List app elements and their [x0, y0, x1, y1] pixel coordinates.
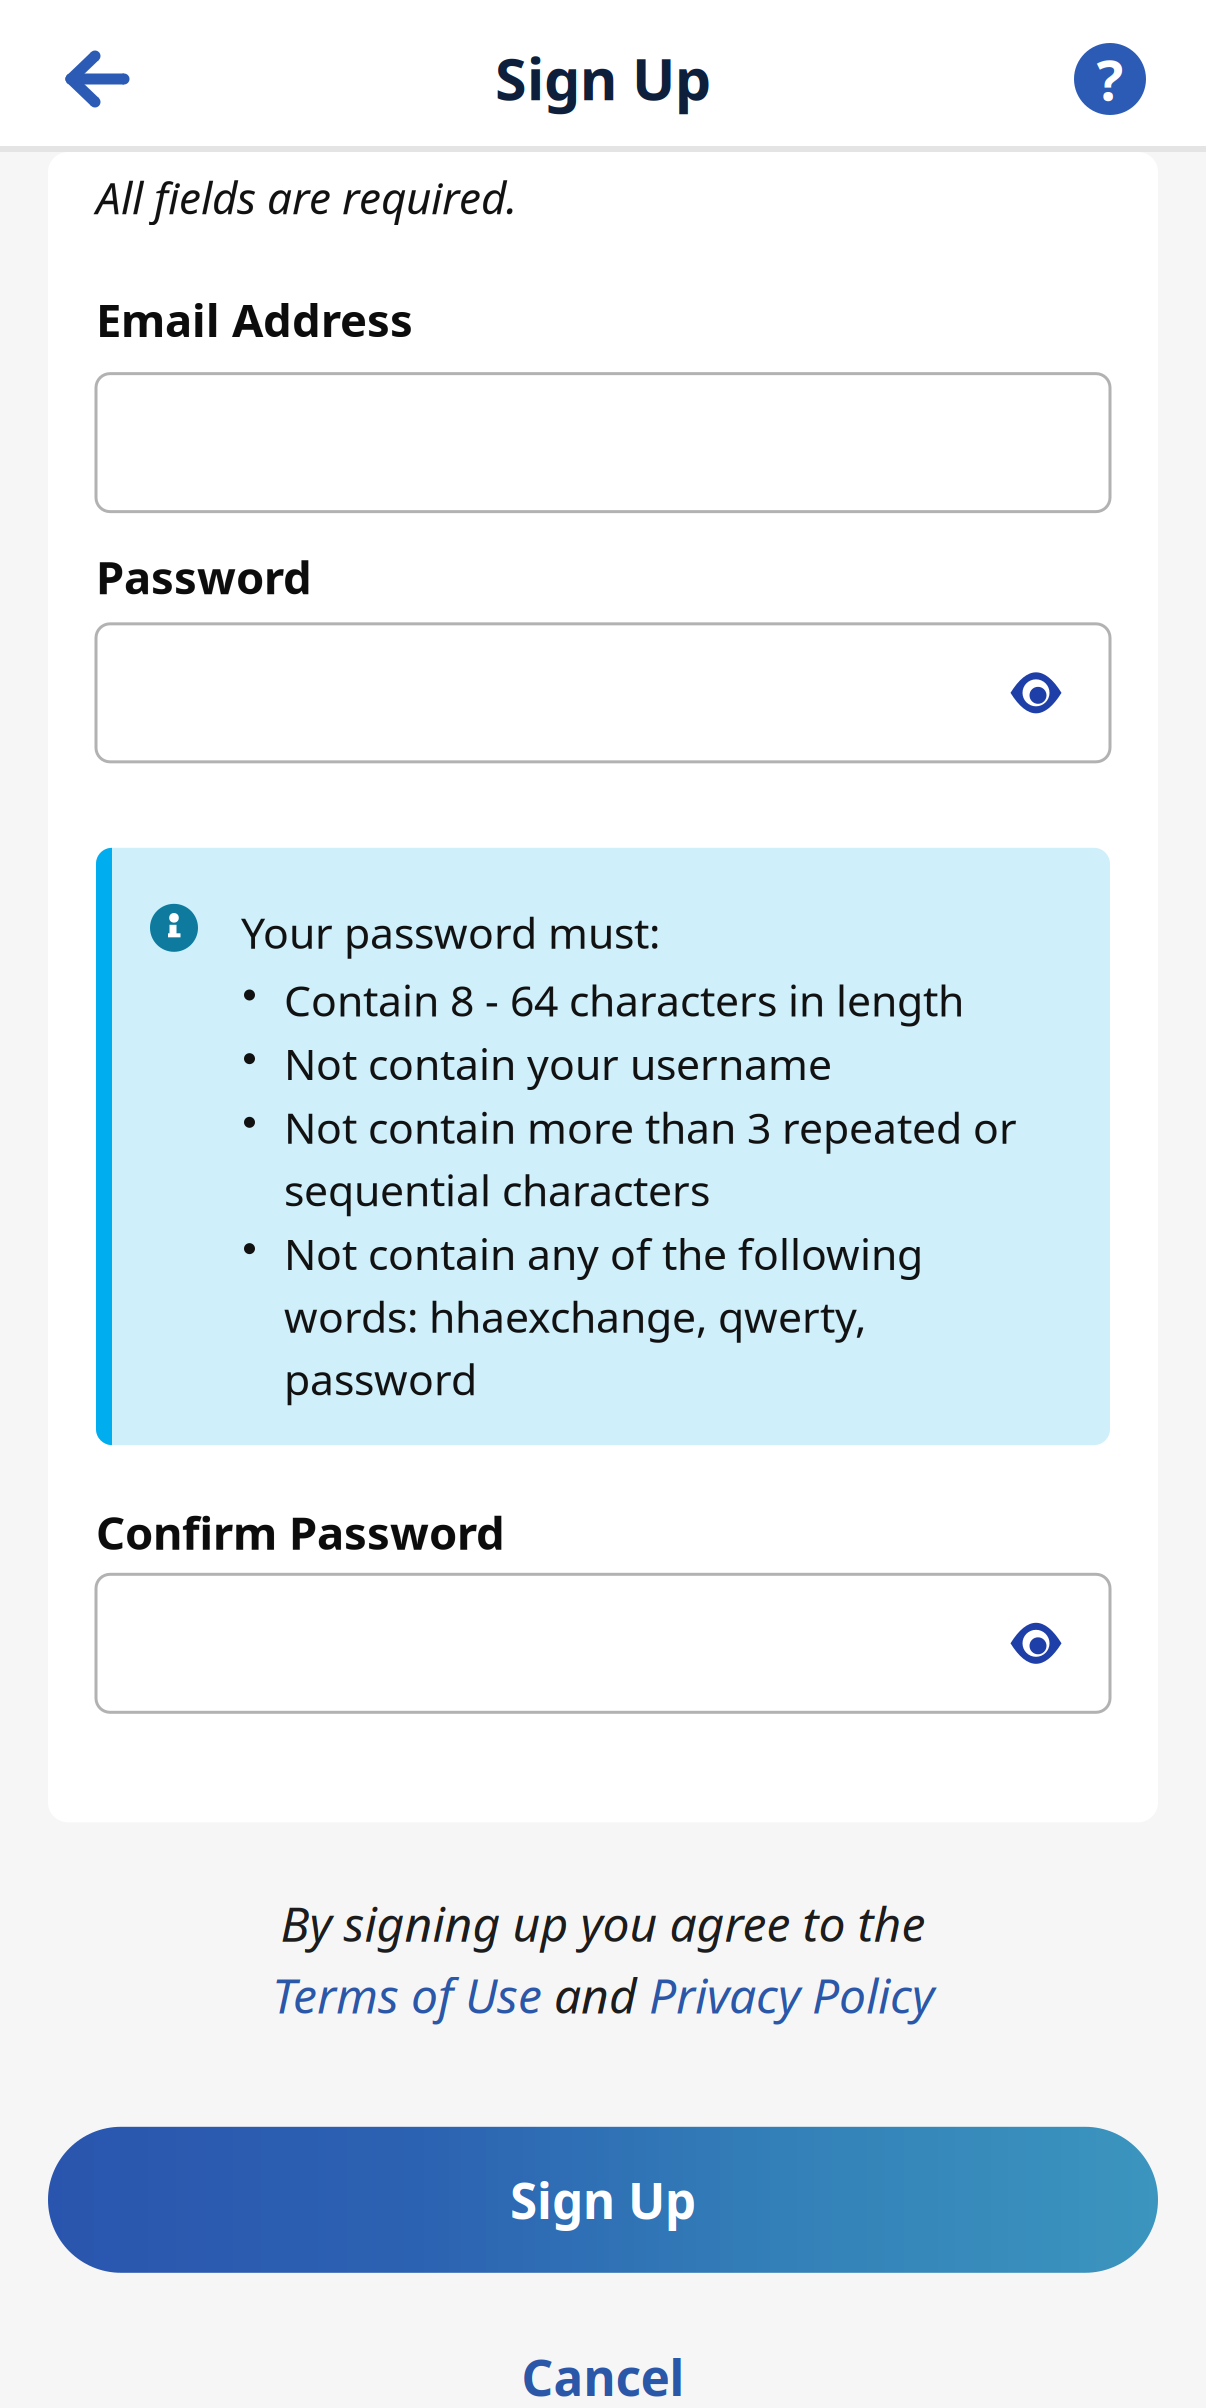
staticText: Your password must: [241, 904, 660, 960]
staticText: Not contain any of the following words: … [284, 1225, 923, 1407]
staticText: Sign Up [495, 40, 711, 116]
staticText: Not contain more than 3 repeated or sequ… [284, 1099, 1017, 1218]
staticText: Password [96, 547, 312, 607]
staticText: and [542, 1963, 649, 2027]
staticText: Terms of Use [272, 1963, 542, 2027]
staticText: Sign Up [510, 2167, 696, 2232]
staticText: Privacy Policy [649, 1963, 934, 2027]
button[interactable]: Help [1050, 8, 1170, 138]
staticText: Not contain your username [284, 1035, 832, 1092]
button[interactable]: Show password [1010, 672, 1110, 714]
staticText: Contain 8 - 64 characters in length [284, 971, 964, 1028]
staticText: ? [1096, 42, 1123, 116]
button[interactable]: Terms of Use [272, 1963, 542, 2027]
button[interactable]: Sign Up [48, 2127, 1158, 2273]
button[interactable]: Privacy Policy [649, 1963, 934, 2027]
staticText: Confirm Password [96, 1502, 505, 1562]
button[interactable]: Back [34, 8, 164, 138]
button[interactable]: Cancel [0, 2322, 1206, 2408]
staticText: Email Address [96, 289, 413, 350]
staticText: Cancel [521, 2344, 684, 2408]
staticText: All fields are required. [96, 168, 517, 226]
staticText: By signing up you agree to the [280, 1891, 925, 1955]
button[interactable]: Show password [1010, 1622, 1110, 1664]
